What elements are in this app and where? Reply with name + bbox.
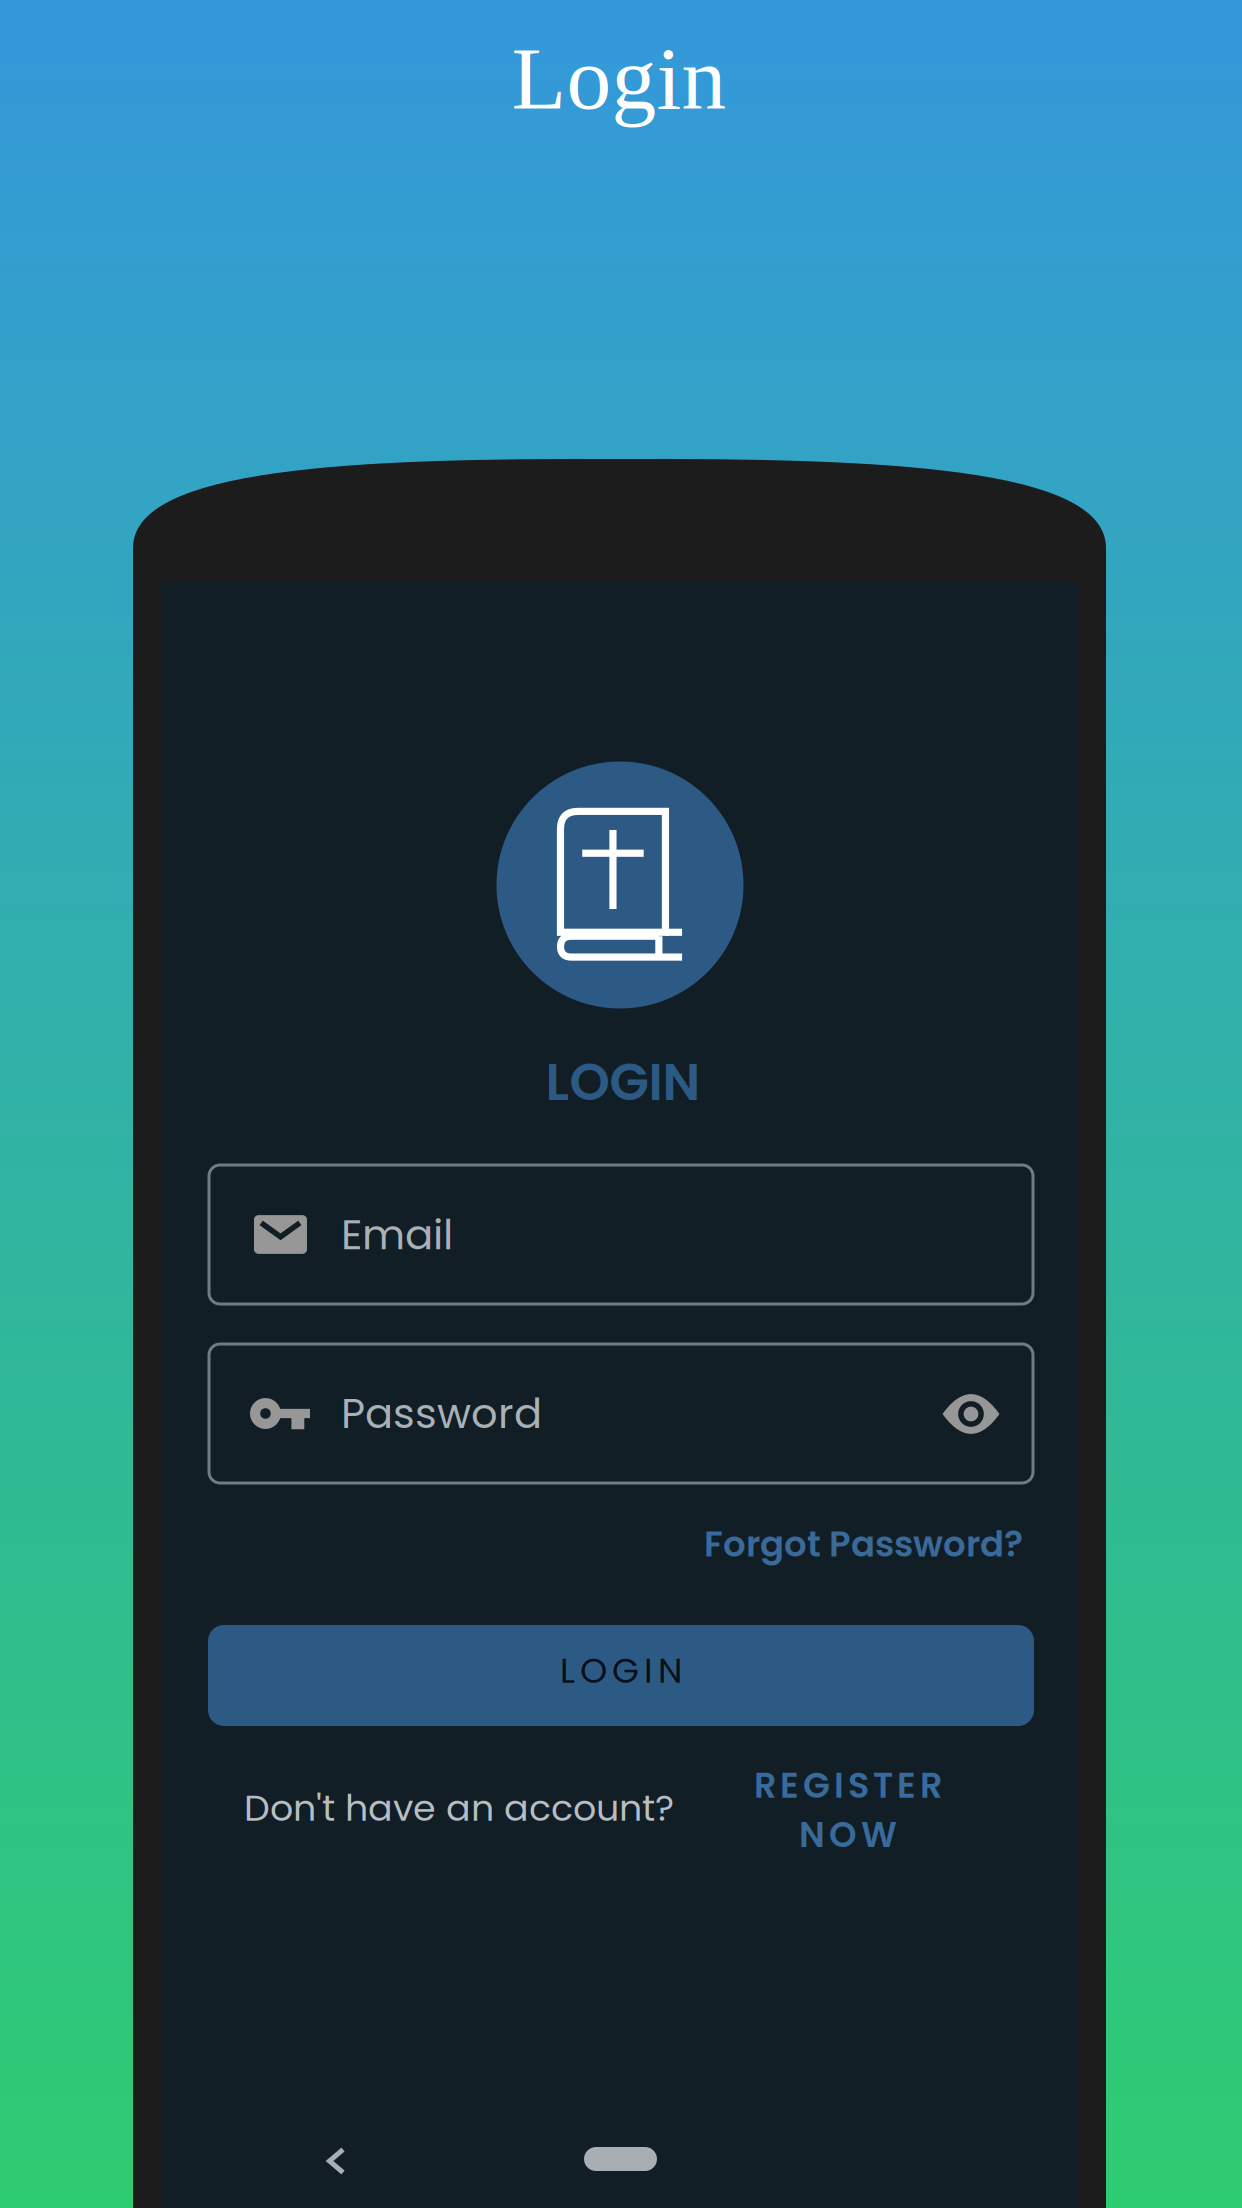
button[interactable]: Back (293, 2113, 379, 2208)
staticText: Forgot Password? (704, 1519, 1023, 1569)
button[interactable]: Home (544, 2111, 697, 2207)
staticText: Email (341, 1205, 453, 1264)
staticText: LOGIN (560, 1646, 682, 1695)
staticText: LOGIN (545, 1046, 700, 1118)
button[interactable]: Email (209, 1165, 1033, 1304)
button[interactable]: REGISTER (748, 1761, 948, 1859)
button[interactable]: Forgot Password? (211, 1513, 1023, 1575)
staticText: Don't have an account? (244, 1782, 674, 1833)
staticText: Password (341, 1384, 542, 1443)
button[interactable]: LOGIN (208, 1625, 1034, 1726)
staticText: NOW (799, 1810, 897, 1859)
staticText: Login (511, 29, 726, 128)
staticText: REGISTER (754, 1761, 942, 1810)
button[interactable]: Show password (923, 1366, 1019, 1462)
button[interactable]: Password (209, 1344, 1033, 1483)
